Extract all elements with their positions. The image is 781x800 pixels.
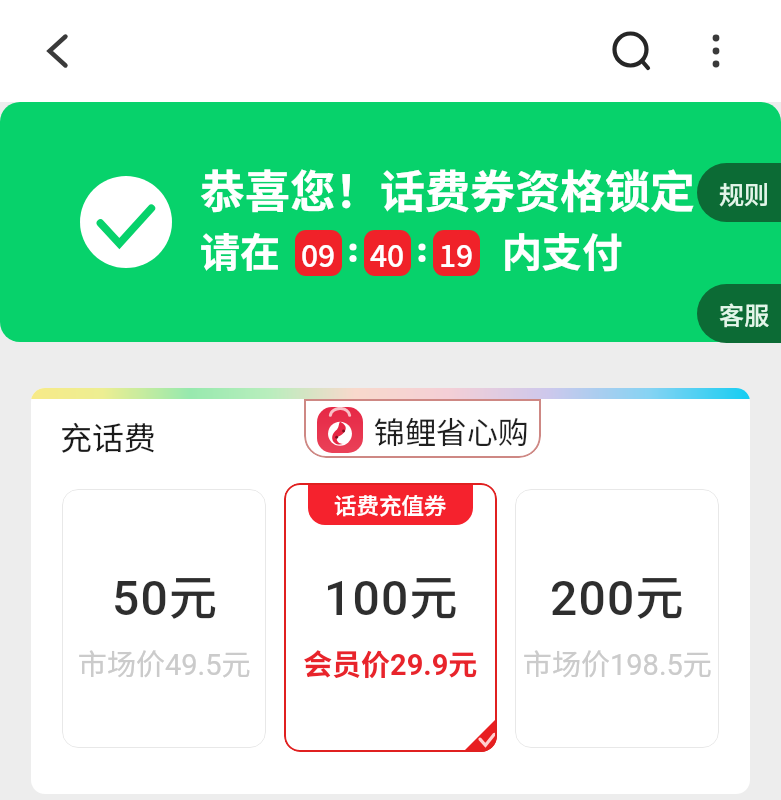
staticText: 会员价29.9元 bbox=[303, 641, 478, 683]
button[interactable]: 话费充值券 bbox=[284, 483, 497, 752]
button[interactable]: 50元 bbox=[62, 489, 266, 748]
staticText: 50元 bbox=[112, 559, 217, 629]
button[interactable]: Search bbox=[603, 23, 659, 79]
staticText: 市场价198.5元 bbox=[523, 641, 712, 683]
button[interactable]: 客服 bbox=[697, 284, 781, 343]
staticText: 充话费 bbox=[60, 413, 157, 459]
button[interactable]: More options bbox=[688, 23, 744, 79]
staticText: 恭喜您！话费券资格锁定 bbox=[200, 156, 696, 221]
staticText: 客服 bbox=[719, 296, 770, 332]
staticText: 内支付 bbox=[502, 221, 622, 279]
staticText: 200元 bbox=[550, 559, 684, 629]
staticText: 规则 bbox=[719, 175, 770, 211]
staticText: 19 bbox=[439, 232, 474, 275]
staticText: 市场价49.5元 bbox=[78, 641, 251, 683]
button[interactable]: 规则 bbox=[697, 163, 781, 222]
staticText: 09 bbox=[301, 232, 336, 275]
button[interactable]: 200元 bbox=[515, 489, 719, 748]
button[interactable]: Back bbox=[28, 23, 84, 79]
button[interactable]: 锦鲤省心购 bbox=[304, 399, 541, 458]
staticText: 40 bbox=[370, 232, 405, 275]
staticText: 100元 bbox=[324, 559, 458, 629]
staticText: 话费充值券 bbox=[334, 488, 447, 521]
staticText: 请在 bbox=[200, 221, 280, 279]
staticText: 锦鲤省心购 bbox=[374, 408, 529, 453]
